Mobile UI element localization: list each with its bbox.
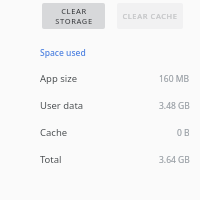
staticText: CLEAR CACHE — [122, 11, 178, 21]
button[interactable]: Cache — [0, 119, 200, 146]
staticText: Cache — [40, 126, 68, 139]
button[interactable]: CLEAR — [42, 3, 105, 29]
staticText: Space used — [40, 47, 86, 59]
staticText: 3.64 GB — [159, 154, 190, 166]
button[interactable]: Total — [0, 146, 200, 173]
button[interactable]: CLEAR CACHE — [117, 3, 183, 29]
staticText: App size — [40, 72, 78, 85]
staticText: 0 B — [177, 127, 190, 139]
staticText: User data — [40, 99, 84, 112]
button[interactable]: App size — [0, 65, 200, 92]
staticText: CLEAR — [61, 6, 87, 16]
staticText: Total — [40, 153, 62, 166]
button[interactable]: User data — [0, 92, 200, 119]
staticText: 3.48 GB — [159, 100, 190, 112]
staticText: 160 MB — [159, 73, 190, 85]
staticText: STORAGE — [55, 16, 93, 26]
